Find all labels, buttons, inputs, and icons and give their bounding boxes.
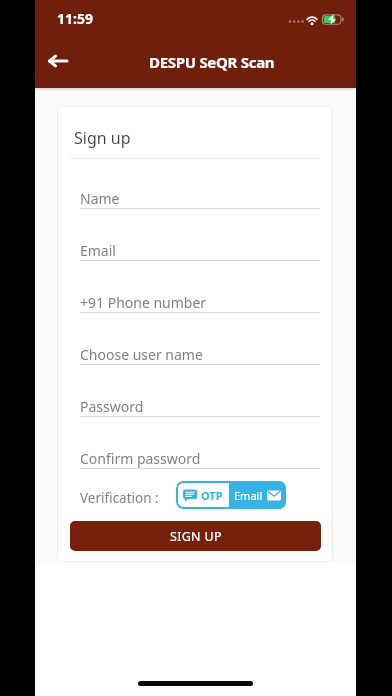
button[interactable]: Email	[229, 481, 286, 509]
button[interactable]: Password	[70, 388, 321, 418]
button[interactable]: SIGN UP	[70, 521, 321, 551]
button[interactable]: Name	[70, 180, 321, 210]
staticText: Password	[80, 397, 144, 416]
staticText: OTP	[201, 488, 223, 503]
staticText: Confirm password	[80, 449, 201, 468]
button[interactable]: Confirm password	[70, 440, 321, 470]
staticText: SIGN UP	[170, 528, 222, 545]
staticText: Choose user name	[80, 345, 203, 364]
staticText: Name	[80, 189, 120, 208]
button[interactable]: Choose user name	[70, 336, 321, 366]
staticText: +91 Phone number	[80, 293, 207, 312]
staticText: DESPU SeQR Scan	[149, 52, 275, 72]
staticText: Sign up	[74, 127, 131, 149]
staticText: Verification :	[80, 489, 159, 507]
button[interactable]: Email	[70, 232, 321, 262]
staticText: Email	[80, 241, 116, 260]
staticText: Email	[234, 488, 263, 503]
staticText: 11:59	[57, 9, 93, 28]
button[interactable]: +91 Phone number	[70, 284, 321, 314]
button[interactable]	[39, 49, 77, 75]
button[interactable]: OTP	[176, 481, 229, 509]
